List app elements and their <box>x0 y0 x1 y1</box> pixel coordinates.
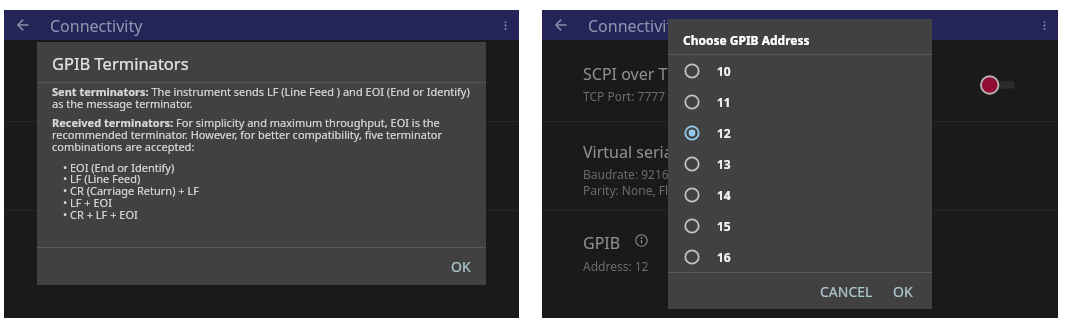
button[interactable]: GPIB info <box>635 234 648 247</box>
staticText: 13 <box>717 156 731 172</box>
button[interactable]: 16 <box>668 241 932 272</box>
staticText: Address: 12 <box>583 258 649 274</box>
button[interactable]: GPIB <box>4 211 519 318</box>
staticText: Virtual serial port <box>583 141 713 163</box>
button[interactable]: Back <box>8 10 38 40</box>
staticText: Choose GPIB Address <box>683 32 810 48</box>
staticText: Baudrate: 921600 <box>45 166 145 182</box>
staticText: 12 <box>717 125 731 141</box>
staticText: 14 <box>717 187 731 203</box>
staticText: 11 <box>717 94 731 110</box>
staticText: OK <box>451 257 471 276</box>
button[interactable]: 14 <box>668 179 932 210</box>
button[interactable]: More options <box>1031 12 1057 38</box>
staticText: Connectivity <box>588 15 681 37</box>
button[interactable]: Back <box>546 10 576 40</box>
staticText: SCPI over TCP <box>45 63 149 85</box>
button[interactable]: Virtual serial port <box>542 122 1058 210</box>
button[interactable]: SCPI over TCP <box>542 40 1058 121</box>
button[interactable]: SCPI over TCP <box>4 40 519 121</box>
button[interactable]: Virtual serial port <box>4 122 519 210</box>
button[interactable]: 10 <box>668 55 932 86</box>
staticText: Baudrate: 921600 <box>583 166 683 182</box>
staticText: GPIB <box>583 232 621 254</box>
staticText: 16 <box>717 249 731 265</box>
staticText: 10 <box>717 63 731 79</box>
button[interactable]: More options <box>492 12 518 38</box>
button[interactable]: CANCEL <box>812 275 881 308</box>
button[interactable]: 11 <box>668 86 932 117</box>
staticText: Connectivity <box>50 15 143 37</box>
staticText: SCPI over TCP <box>583 63 687 85</box>
button[interactable]: 13 <box>668 148 932 179</box>
staticText: TCP Port: 7777 <box>45 88 127 104</box>
staticText: OK <box>893 282 913 301</box>
staticText: Parity: None, Flow control: None <box>583 182 765 198</box>
button[interactable]: 12 <box>668 117 932 148</box>
staticText: Parity: None, Flow control: None <box>45 182 227 198</box>
staticText: CANCEL <box>820 282 873 301</box>
staticText: Sent terminators: The instrument sends L… <box>52 84 472 111</box>
staticText: • EOI (End or Identify) • LF (Line Feed)… <box>63 160 199 222</box>
staticText: GPIB Terminators <box>52 52 189 74</box>
staticText: Received terminators: For simplicity and… <box>52 115 472 154</box>
button[interactable]: GPIB <box>542 211 1058 318</box>
button[interactable]: SCPI over TCP toggle <box>980 65 1028 105</box>
button[interactable]: OK <box>885 275 921 308</box>
staticText: Virtual serial port <box>45 141 175 163</box>
button[interactable]: OK <box>442 250 480 283</box>
staticText: TCP Port: 7777 <box>583 88 665 104</box>
button[interactable]: 15 <box>668 210 932 241</box>
staticText: GPIB <box>45 232 83 254</box>
staticText: 15 <box>717 218 731 234</box>
